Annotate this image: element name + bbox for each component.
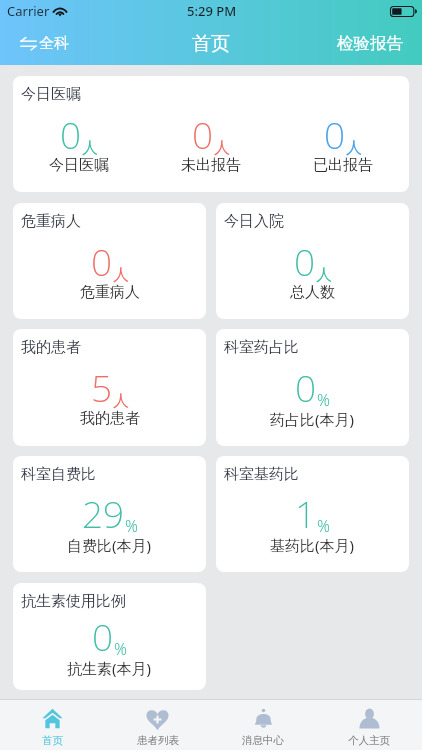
button[interactable]: 消息中心 <box>210 700 316 750</box>
staticText: 基药比(本月) <box>270 535 355 555</box>
staticText: 危重病人 <box>80 283 140 302</box>
staticText: % <box>317 389 330 411</box>
button[interactable]: 科室自费比 <box>13 456 206 572</box>
staticText: 0 <box>91 236 113 286</box>
staticText: 0 <box>324 109 346 159</box>
staticText: 我的患者 <box>21 338 81 357</box>
staticText: 0 <box>294 236 316 286</box>
button[interactable]: 今日医嘱 <box>13 76 409 192</box>
button[interactable]: 检验报告 <box>325 22 422 65</box>
staticText: 5:29 PM <box>187 2 237 20</box>
staticText: % <box>125 515 138 537</box>
staticText: 0 <box>92 611 114 661</box>
staticText: 人 <box>82 138 98 158</box>
button[interactable]: 首页 <box>180 22 242 65</box>
staticText: 全科 <box>39 34 69 53</box>
button[interactable]: 危重病人 <box>13 203 206 319</box>
staticText: 0 <box>192 109 214 159</box>
staticText: 0 <box>60 109 82 159</box>
staticText: 消息中心 <box>242 734 284 747</box>
staticText: 人 <box>346 138 362 158</box>
staticText: 今日医嘱 <box>49 156 109 175</box>
button[interactable]: 患者列表 <box>105 700 210 750</box>
staticText: 29 <box>82 488 125 538</box>
button[interactable]: 抗生素使用比例 <box>13 583 206 690</box>
staticText: 首页 <box>42 734 63 747</box>
staticText: 人 <box>113 265 129 285</box>
staticText: 药占比(本月) <box>270 409 355 429</box>
staticText: 首页 <box>192 32 230 56</box>
staticText: 人 <box>214 138 230 158</box>
staticText: 今日医嘱 <box>21 85 81 104</box>
staticText: 1 <box>295 488 317 538</box>
button[interactable]: 个人主页 <box>316 700 422 750</box>
button[interactable]: 我的患者 <box>13 329 206 446</box>
staticText: 总人数 <box>290 283 335 302</box>
staticText: 今日入院 <box>224 212 284 231</box>
staticText: 人 <box>316 265 332 285</box>
staticText: 人 <box>113 391 129 411</box>
staticText: 抗生素(本月) <box>67 658 152 678</box>
staticText: 检验报告 <box>337 33 403 54</box>
staticText: 科室自费比 <box>21 465 96 484</box>
button[interactable]: 切换科室 <box>0 22 81 65</box>
button[interactable]: 今日入院 <box>216 203 409 319</box>
other: Wi-Fi <box>52 6 68 17</box>
button[interactable]: 首页 <box>0 700 105 750</box>
staticText: 我的患者 <box>80 409 140 428</box>
staticText: 抗生素使用比例 <box>21 592 126 611</box>
other: 切换科室 <box>20 35 37 52</box>
staticText: 5 <box>91 362 113 412</box>
staticText: 科室基药比 <box>224 465 299 484</box>
staticText: 个人主页 <box>348 734 390 747</box>
button[interactable]: 科室基药比 <box>216 456 409 572</box>
staticText: 危重病人 <box>21 212 81 231</box>
staticText: 未出报告 <box>181 156 241 175</box>
staticText: 自费比(本月) <box>67 535 152 555</box>
staticText: 0 <box>295 362 317 412</box>
staticText: 患者列表 <box>137 734 179 747</box>
staticText: 已出报告 <box>313 156 373 175</box>
other: Battery <box>390 6 417 17</box>
button[interactable]: 科室药占比 <box>216 329 409 446</box>
staticText: % <box>317 515 330 537</box>
staticText: Carrier <box>7 2 50 20</box>
staticText: 科室药占比 <box>224 338 299 357</box>
staticText: % <box>114 638 127 660</box>
